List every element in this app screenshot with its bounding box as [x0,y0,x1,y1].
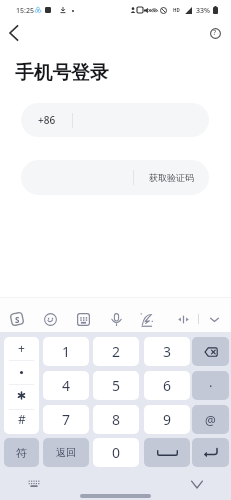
button[interactable]: 1 [43,337,89,366]
staticText: 15:25 [16,6,34,16]
staticText: 获取验证码 [149,172,194,183]
button[interactable]: Space [144,438,190,467]
staticText: 6 [163,376,172,395]
button[interactable]: 9 [144,405,190,434]
button[interactable]: Enter [192,438,229,467]
staticText: 符 [16,446,27,460]
button[interactable]: Hide keyboard [203,308,225,330]
button[interactable]: 0 [93,438,139,467]
button[interactable]: 8 [93,405,139,434]
staticText: 5 [112,376,121,395]
staticText: 9 [163,410,172,429]
button[interactable]: Collapse [187,474,207,494]
button[interactable]: Backspace [192,337,229,366]
staticText: HD [173,7,180,13]
button[interactable]: Help [203,21,227,45]
staticText: S [15,314,20,325]
staticText: 0 [112,443,121,462]
button[interactable]: Switch keyboard [24,474,44,494]
button[interactable]: 获取验证码 [134,160,209,195]
staticText: 返回 [56,446,76,459]
button[interactable]: @ [192,405,229,434]
button[interactable]: 6 [144,371,190,400]
staticText: + [18,340,25,356]
staticText: · [209,377,213,395]
button[interactable]: Back [2,21,26,45]
button[interactable]: 3 [144,337,190,366]
button[interactable] [4,385,39,409]
button[interactable] [4,361,39,384]
staticText: 3 [163,342,172,361]
staticText: +86 [38,113,56,127]
button[interactable]: Voice input [105,308,127,330]
button[interactable]: Cursor move [172,308,194,330]
button[interactable]: 2 [93,337,139,366]
button[interactable]: +86 [21,103,209,137]
button[interactable]: 7 [43,405,89,434]
button[interactable]: Emoji [39,308,61,330]
staticText: 1 [62,342,71,361]
staticText: # [18,411,26,427]
button[interactable]: + [4,337,39,360]
button[interactable]: 符 [4,438,39,467]
button[interactable]: · [192,371,229,400]
button[interactable]: 返回 [43,438,89,467]
button[interactable]: # [4,410,39,434]
staticText: 2 [112,342,121,361]
staticText: 4 [62,376,71,395]
button[interactable]: 5 [93,371,139,400]
button[interactable]: Keyboard layout [72,308,94,330]
staticText: ? [213,28,217,38]
staticText: 7 [62,410,71,429]
staticText: 8 [112,410,121,429]
button[interactable]: Input method [6,308,28,330]
button[interactable]: Handwriting [135,308,157,330]
button[interactable]: 4 [43,371,89,400]
staticText: 手机号登录 [15,61,109,85]
staticText: 33% [196,6,210,16]
staticText: @ [205,412,216,428]
